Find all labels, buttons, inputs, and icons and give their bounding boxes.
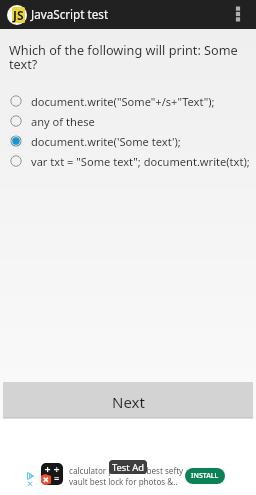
- button[interactable]: document.write('Some text');: [0, 132, 256, 150]
- staticText: INSTALL: [191, 471, 219, 481]
- staticText: JS: [13, 7, 24, 23]
- staticText: Which of the following will print: Some …: [9, 41, 245, 73]
- staticText: document.write("Some"+/s+"Text");: [31, 94, 215, 109]
- staticText: Next: [112, 392, 145, 412]
- button[interactable]: var txt = "Some text"; document.write(tx…: [0, 152, 256, 170]
- staticText: any of these: [31, 114, 95, 129]
- staticText: vault best lock for photos &..: [69, 476, 178, 487]
- staticText: document.write('Some text');: [31, 134, 181, 149]
- button[interactable]: INSTALL: [185, 468, 225, 484]
- button[interactable]: More options: [226, 2, 250, 26]
- staticText: calculator photo lok best sefty: [69, 465, 184, 476]
- button[interactable]: any of these: [0, 112, 256, 130]
- button[interactable]: Next: [3, 382, 253, 419]
- staticText: Test Ad: [112, 461, 144, 474]
- staticText: JavaScript test: [31, 6, 109, 22]
- button[interactable]: document.write("Some"+/s+"Text");: [0, 92, 256, 110]
- staticText: var txt = "Some text"; document.write(tx…: [31, 154, 250, 169]
